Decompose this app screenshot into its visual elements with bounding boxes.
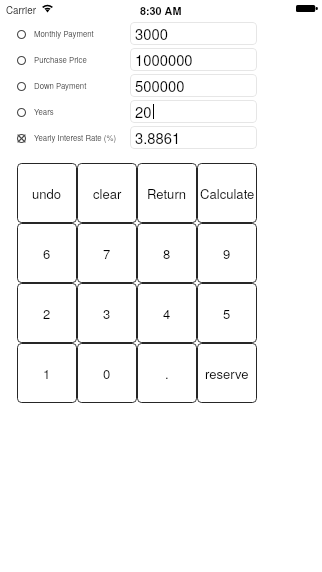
staticText: 4: [163, 304, 171, 323]
button[interactable]: 5: [197, 283, 257, 343]
staticText: Calculate: [200, 184, 255, 203]
staticText: Monthly Payment: [34, 28, 94, 39]
button[interactable]: 2: [17, 283, 77, 343]
staticText: undo: [32, 184, 62, 203]
button[interactable]: 4: [137, 283, 197, 343]
button[interactable]: Monthly Payment: [17, 30, 26, 39]
button[interactable]: 3000: [130, 22, 257, 45]
other: Battery: [296, 5, 318, 12]
staticText: Purchase Price: [34, 54, 87, 65]
button[interactable]: Yearly Interest Rate (%): [17, 134, 26, 143]
staticText: Carrier: [6, 3, 36, 17]
staticText: 3: [103, 304, 111, 323]
button[interactable]: 8: [137, 223, 197, 283]
staticText: 9: [223, 244, 231, 263]
staticText: 20: [135, 101, 152, 122]
button[interactable]: 3.8861: [130, 126, 257, 149]
staticText: 0: [103, 364, 111, 383]
button[interactable]: 1000000: [130, 48, 257, 71]
button[interactable]: 0: [77, 343, 137, 403]
button[interactable]: 20: [130, 100, 257, 123]
button[interactable]: 1: [17, 343, 77, 403]
button[interactable]: Calculate: [197, 163, 257, 223]
staticText: 8: [163, 244, 171, 263]
button[interactable]: Down Payment: [17, 82, 26, 91]
staticText: 3.8861: [135, 127, 181, 148]
staticText: 8:30 AM: [140, 3, 182, 18]
button[interactable]: Return: [137, 163, 197, 223]
button[interactable]: Purchase Price: [17, 56, 26, 65]
button[interactable]: Years: [17, 108, 26, 117]
button[interactable]: .: [137, 343, 197, 403]
staticText: reserve: [205, 364, 249, 383]
staticText: 3000: [135, 23, 168, 44]
staticText: 500000: [135, 75, 185, 96]
staticText: .: [165, 364, 169, 383]
staticText: 6: [43, 244, 51, 263]
staticText: Down Payment: [34, 80, 87, 91]
other: Wi-Fi: [42, 4, 53, 11]
staticText: 5: [223, 304, 231, 323]
button[interactable]: undo: [17, 163, 77, 223]
button[interactable]: reserve: [197, 343, 257, 403]
button[interactable]: 500000: [130, 74, 257, 97]
staticText: clear: [93, 184, 122, 203]
staticText: 2: [43, 304, 51, 323]
staticText: Years: [34, 106, 54, 117]
button[interactable]: 6: [17, 223, 77, 283]
staticText: 1: [43, 364, 51, 383]
button[interactable]: clear: [77, 163, 137, 223]
staticText: Return: [147, 184, 187, 203]
button[interactable]: 7: [77, 223, 137, 283]
staticText: 7: [103, 244, 111, 263]
staticText: 1000000: [135, 49, 193, 70]
button[interactable]: 9: [197, 223, 257, 283]
button[interactable]: 3: [77, 283, 137, 343]
staticText: Yearly Interest Rate (%): [34, 132, 116, 143]
